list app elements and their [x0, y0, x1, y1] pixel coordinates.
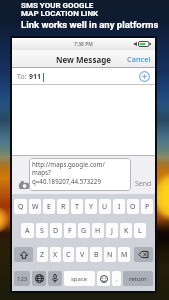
staticText: Q [18, 202, 24, 212]
button[interactable]: C [63, 247, 74, 262]
staticText: G [81, 226, 87, 236]
staticText: SMS YOUR GOOGLE [21, 1, 94, 10]
button[interactable]: M [118, 247, 130, 262]
button[interactable]: Dictate [48, 271, 62, 286]
staticText: 7:38 PM [74, 41, 93, 48]
staticText: J [111, 226, 113, 236]
staticText: 123 [17, 275, 28, 283]
button[interactable]: P [141, 199, 153, 214]
button[interactable]: T [71, 199, 83, 214]
button[interactable]: F [64, 223, 76, 238]
staticText: B [94, 250, 99, 260]
staticText: Send [135, 179, 152, 189]
button[interactable]: L [134, 223, 146, 238]
button[interactable]: O [127, 199, 139, 214]
button[interactable]: return [123, 271, 153, 286]
staticText: R [61, 202, 66, 212]
staticText: Cancel [127, 54, 151, 64]
staticText: space [71, 275, 88, 283]
staticText: N [107, 250, 113, 260]
button[interactable]: Numbers [14, 271, 30, 286]
staticText: To: [17, 72, 29, 82]
button[interactable]: Y [85, 199, 97, 214]
staticText: M [121, 250, 128, 260]
button[interactable]: R [57, 199, 69, 214]
button[interactable]: Cancel [123, 50, 155, 68]
button[interactable]: Send [133, 177, 154, 191]
staticText: E [47, 202, 51, 212]
staticText: H [95, 226, 101, 236]
button[interactable]: B [90, 247, 102, 262]
button[interactable]: . [112, 271, 121, 286]
button[interactable]: Q [14, 199, 27, 214]
staticText: F [68, 226, 72, 236]
staticText: L [138, 226, 142, 236]
staticText: A [25, 226, 30, 236]
staticText: C [66, 250, 71, 260]
button[interactable]: Switch keyboard [32, 271, 46, 286]
button[interactable]: A [21, 223, 34, 238]
staticText: 911 [29, 72, 42, 82]
staticText: S [40, 226, 44, 236]
staticText: U [102, 202, 108, 212]
staticText: O [130, 202, 136, 212]
button[interactable]: J [106, 223, 118, 238]
button[interactable]: Emoji [97, 271, 110, 286]
button[interactable]: D [50, 223, 62, 238]
staticText: W [32, 202, 39, 212]
button[interactable]: W [29, 199, 41, 214]
staticText: . [116, 275, 118, 283]
staticText: X [53, 250, 58, 260]
staticText: return [129, 275, 147, 283]
staticText: D [53, 226, 59, 236]
button[interactable]: X [50, 247, 61, 262]
staticText: I [118, 202, 121, 212]
staticText: Y [89, 202, 93, 212]
staticText: Link works well in any platforms [21, 19, 159, 30]
button[interactable]: N [104, 247, 116, 262]
button[interactable]: U [99, 199, 111, 214]
button[interactable]: G [78, 223, 90, 238]
staticText: http://maps.google.com/ maps? q=40.18920… [32, 160, 105, 186]
staticText: T [75, 202, 79, 212]
staticText: K [124, 226, 129, 236]
button[interactable]: S [36, 223, 48, 238]
button[interactable]: http://maps.google.com/ maps? q=40.18920… [29, 158, 131, 191]
button[interactable]: E [43, 199, 55, 214]
button[interactable]: K [120, 223, 132, 238]
button[interactable]: Shift [14, 247, 33, 262]
button[interactable]: H [92, 223, 104, 238]
button[interactable]: Add contact [139, 71, 150, 82]
button[interactable]: space [64, 271, 95, 286]
staticText: New Message [56, 54, 112, 65]
staticText: V [80, 250, 85, 260]
button[interactable]: Backspace [134, 247, 153, 262]
button[interactable]: Z [37, 247, 48, 262]
staticText: MAP LOCATION LINK [21, 9, 99, 18]
button[interactable]: Camera [19, 181, 29, 189]
button[interactable]: I [113, 199, 125, 214]
button[interactable]: V [76, 247, 88, 262]
staticText: Z [40, 250, 45, 260]
staticText: P [145, 202, 150, 212]
